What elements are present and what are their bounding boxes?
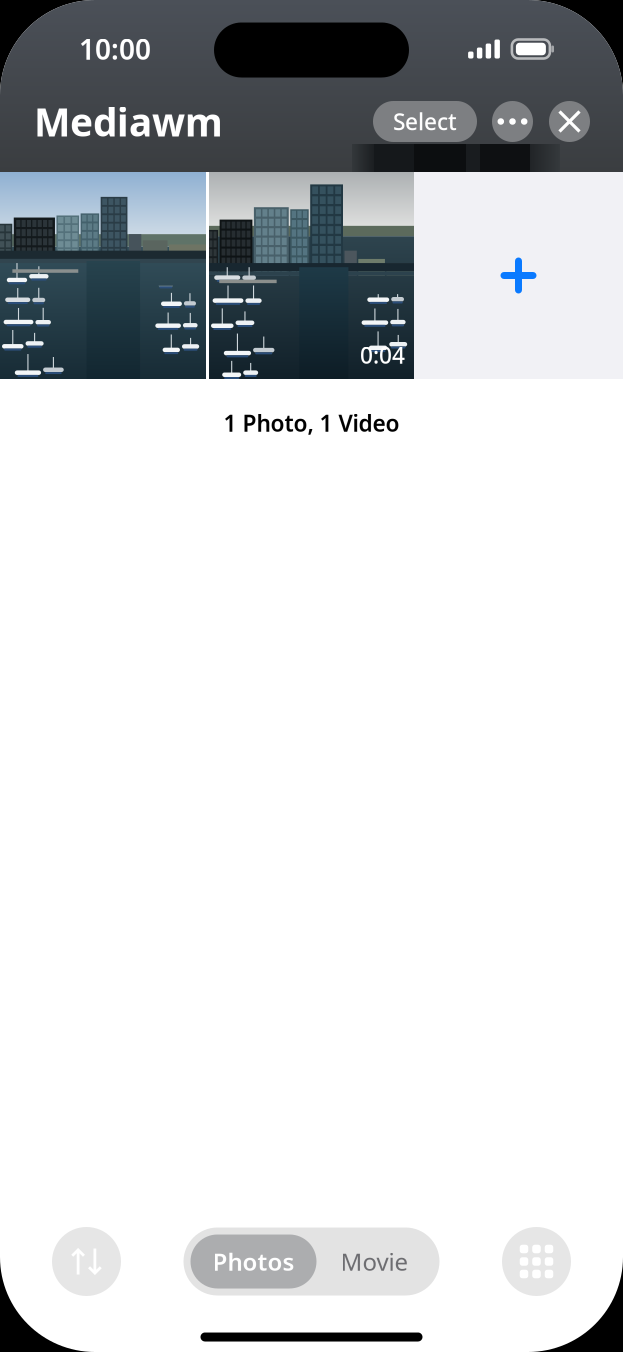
staticText: Movie	[340, 1246, 408, 1277]
button[interactable]: Photo	[0, 172, 206, 379]
button[interactable]: Add media	[414, 172, 623, 379]
button[interactable]: Video, 4 seconds	[209, 172, 414, 379]
button[interactable]: Select	[373, 101, 477, 142]
staticText: 10:00	[79, 30, 151, 68]
button[interactable]: More options	[492, 101, 533, 142]
button[interactable]: Movie	[316, 1234, 432, 1288]
staticText: Photos	[212, 1246, 294, 1277]
staticText: 1 Photo, 1 Video	[223, 408, 399, 438]
button[interactable]: Grid view	[502, 1227, 571, 1296]
button[interactable]: Sort	[52, 1227, 121, 1296]
staticText: 0:04	[360, 340, 405, 370]
staticText: Mediawm	[34, 96, 223, 147]
button[interactable]: Close	[549, 101, 590, 142]
staticText: Select	[393, 106, 457, 136]
button[interactable]: Photos	[190, 1234, 316, 1288]
